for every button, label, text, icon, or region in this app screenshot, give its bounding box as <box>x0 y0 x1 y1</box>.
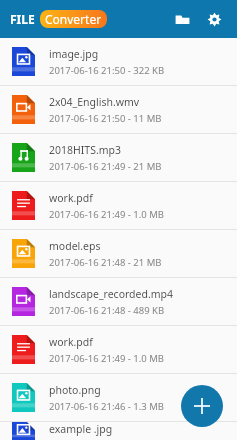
button[interactable]: Add file <box>181 385 223 427</box>
button[interactable]: example .jpg <box>0 422 237 440</box>
button[interactable]: work.pdf <box>0 182 237 230</box>
button[interactable]: model.eps <box>0 230 237 278</box>
button[interactable]: 2018HITS.mp3 <box>0 134 237 182</box>
button[interactable]: landscape_recorded.mp4 <box>0 278 237 326</box>
button[interactable]: Settings <box>201 6 227 32</box>
button[interactable]: image.jpg <box>0 38 237 86</box>
staticText: 2017-06-16 21:49 - 21 MB <box>49 160 162 173</box>
staticText: work.pdf <box>49 191 93 205</box>
staticText: 2017-06-16 21:49 - 1.0 MB <box>49 208 165 221</box>
staticText: FILE <box>10 11 35 27</box>
button[interactable]: 2x04_English.wmv <box>0 86 237 134</box>
button[interactable]: work.pdf <box>0 326 237 374</box>
staticText: photo.png <box>49 383 101 397</box>
staticText: 2018HITS.mp3 <box>49 143 122 157</box>
staticText: 2x04_English.wmv <box>49 95 140 109</box>
staticText: 2017-06-16 21:48 - 21 MB <box>49 256 162 269</box>
staticText: work.pdf <box>49 335 93 349</box>
staticText: 2017-06-16 21:49 - 1.0 MB <box>49 352 165 365</box>
staticText: 2017-06-16 21:50 - 11 MB <box>49 112 162 125</box>
staticText: image.jpg <box>49 47 99 61</box>
button[interactable]: photo.png <box>0 374 237 422</box>
staticText: 2017-06-16 21:50 - 322 KB <box>49 64 165 77</box>
staticText: Converter <box>45 11 102 27</box>
staticText: 2017-06-16 21:48 - 489 KB <box>49 304 165 317</box>
button[interactable]: Browse folders <box>169 6 195 32</box>
staticText: 2017-06-16 21:46 - 1.3 MB <box>49 400 165 413</box>
staticText: model.eps <box>49 239 101 253</box>
staticText: example .jpg <box>49 422 113 436</box>
staticText: landscape_recorded.mp4 <box>49 287 174 301</box>
